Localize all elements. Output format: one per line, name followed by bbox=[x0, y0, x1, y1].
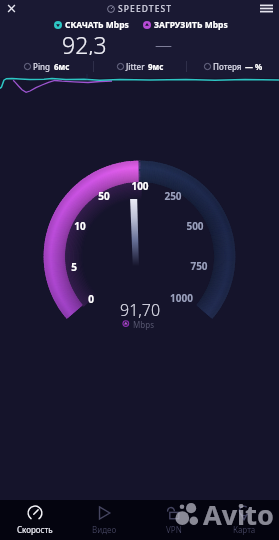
staticText: Потеря bbox=[213, 61, 242, 72]
button[interactable]: Скорость bbox=[0, 500, 69, 540]
button[interactable]: Видео bbox=[69, 500, 139, 540]
staticText: Ping bbox=[33, 61, 51, 72]
button[interactable]: VPN bbox=[139, 500, 209, 540]
staticText: — % bbox=[245, 61, 263, 72]
staticText: 750 bbox=[190, 259, 208, 273]
staticText: 9мс bbox=[148, 61, 164, 72]
staticText: 500 bbox=[186, 219, 204, 233]
staticText: ЗАГРУЗИТЬ Mbps bbox=[154, 19, 228, 30]
staticText: 10 bbox=[74, 219, 86, 233]
staticText: 5 bbox=[71, 260, 77, 274]
staticText: Avito bbox=[203, 496, 274, 533]
staticText: Jitter bbox=[126, 61, 145, 72]
button[interactable]: Карта bbox=[209, 500, 279, 540]
staticText: VPN bbox=[166, 524, 182, 535]
staticText: Карта bbox=[233, 524, 256, 535]
button[interactable]: Close bbox=[3, 0, 20, 17]
staticText: СКАЧАТЬ Mbps bbox=[65, 19, 129, 30]
staticText: — bbox=[155, 33, 172, 56]
staticText: 91,70 bbox=[120, 299, 161, 321]
staticText: 100 bbox=[131, 179, 149, 193]
button[interactable]: Menu bbox=[260, 2, 273, 15]
staticText: 6мс bbox=[54, 61, 70, 72]
staticText: Mbps bbox=[133, 319, 155, 330]
staticText: Скорость bbox=[17, 524, 53, 535]
staticText: Видео bbox=[92, 524, 117, 535]
staticText: SPEEDTEST bbox=[118, 3, 173, 15]
staticText: 1000 bbox=[170, 291, 193, 305]
staticText: 0 bbox=[88, 292, 94, 306]
staticText: 250 bbox=[164, 189, 182, 203]
staticText: 50 bbox=[98, 189, 110, 203]
staticText: 92,3 bbox=[62, 29, 107, 55]
